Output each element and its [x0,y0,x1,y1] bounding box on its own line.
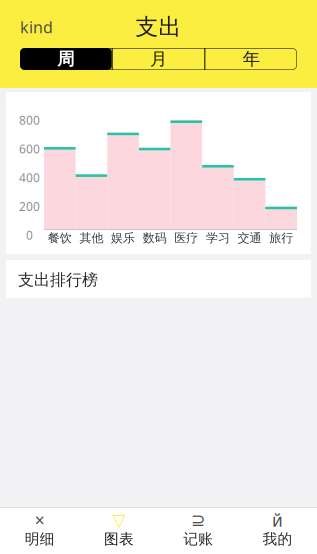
button[interactable]: 我的 [238,508,317,554]
staticText: 娱乐 [111,231,135,245]
staticText: 支出排行榜 [18,270,98,290]
button[interactable]: n [6,492,311,554]
staticText: 600 [19,141,40,157]
button[interactable]: n [6,292,311,358]
staticText: й [272,508,283,531]
staticText: ▽ [112,510,125,530]
button[interactable]: 月 [113,48,204,70]
staticText: 0 [26,227,33,243]
staticText: × [35,508,45,531]
button[interactable]: 图表 [79,508,158,554]
staticText: 200 [19,198,40,214]
button[interactable]: 周 [20,48,112,70]
staticText: 图表 [104,530,134,548]
staticText: 800 [19,112,40,128]
staticText: 明细 [25,530,55,548]
staticText: 餐饮 [48,231,72,245]
staticText: 我的 [262,530,292,548]
staticText: 记账 [183,530,213,548]
staticText: kind [20,16,53,38]
staticText: ⊇ [191,510,206,530]
staticText: 数码 [48,501,80,520]
staticText: 数码 [143,231,167,245]
staticText: 400 [19,169,40,185]
staticText: 月 [150,48,167,70]
staticText: 旅行 [269,231,293,245]
staticText: 年 [243,48,260,70]
button[interactable]: 记账 [158,508,238,554]
button[interactable]: 年 [205,48,297,70]
staticText: 学习 [206,231,230,245]
staticText: 支出 [135,13,181,41]
staticText: 交通 [238,231,262,245]
staticText: 其他 [79,231,103,245]
button[interactable]: 明细 [0,508,79,554]
staticText: 周 [57,48,74,70]
staticText: 医疗 [174,231,198,245]
staticText: n [21,513,32,536]
